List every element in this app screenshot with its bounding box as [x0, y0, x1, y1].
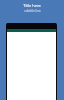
staticText: Title here: [23, 3, 41, 8]
staticText: subtitle line: [24, 9, 41, 13]
